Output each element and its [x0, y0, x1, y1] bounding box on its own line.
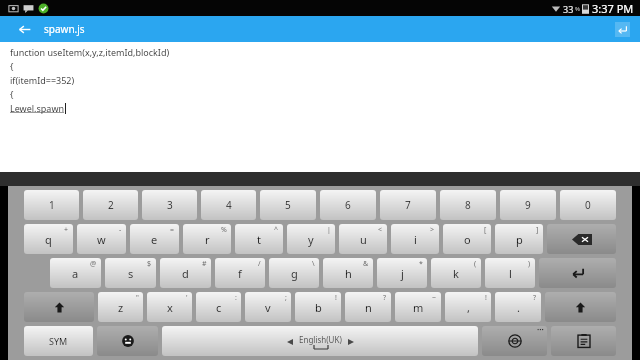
staticText: / — [258, 259, 261, 269]
staticText: u — [360, 232, 367, 247]
staticText: = — [170, 225, 175, 235]
button[interactable]: 6 — [320, 190, 376, 220]
staticText: ( — [474, 259, 477, 269]
button[interactable]: Shift — [24, 292, 94, 322]
staticText: ~ — [432, 293, 437, 303]
staticText: ? — [383, 293, 387, 303]
button[interactable]: 4 — [201, 190, 256, 220]
button[interactable]: k — [431, 258, 481, 288]
staticText: < — [378, 225, 383, 235]
staticText: b — [315, 300, 322, 315]
staticText: 33 — [563, 3, 574, 15]
button[interactable]: x — [147, 292, 192, 322]
button[interactable]: n — [345, 292, 391, 322]
staticText: i — [414, 232, 417, 247]
button[interactable]: Change language — [482, 326, 547, 356]
button[interactable]: v — [245, 292, 291, 322]
button[interactable]: i — [391, 224, 439, 254]
button[interactable]: w — [77, 224, 126, 254]
other: Sync complete — [38, 3, 49, 14]
button[interactable]: 2 — [83, 190, 138, 220]
staticText: ) — [528, 259, 531, 269]
staticText: f — [238, 266, 242, 281]
staticText: & — [363, 259, 369, 269]
button[interactable]: r — [183, 224, 231, 254]
button[interactable]: b — [295, 292, 341, 322]
other: Screenshot — [8, 3, 19, 14]
button[interactable]: a — [50, 258, 101, 288]
staticText: ' — [186, 293, 188, 303]
button[interactable]: 0 — [560, 190, 616, 220]
staticText: 8 — [465, 198, 471, 212]
staticText: Lewel.spawn — [10, 102, 65, 114]
staticText: n — [365, 300, 372, 315]
button[interactable]: j — [377, 258, 427, 288]
staticText: 3 — [167, 198, 173, 212]
button[interactable]: f — [215, 258, 265, 288]
button[interactable]: 7 — [380, 190, 436, 220]
staticText: w — [97, 232, 106, 247]
staticText: if(itemId==352) — [10, 74, 75, 86]
staticText: 9 — [525, 198, 531, 212]
other: Messages — [23, 3, 34, 14]
button[interactable]: e — [130, 224, 179, 254]
button[interactable]: s — [105, 258, 156, 288]
button[interactable]: t — [235, 224, 283, 254]
button[interactable]: Emoji — [97, 326, 158, 356]
button[interactable]: 3 — [142, 190, 197, 220]
button[interactable]: u — [339, 224, 387, 254]
staticText: c — [216, 300, 222, 315]
staticText: m — [413, 300, 424, 315]
staticText: { — [10, 60, 14, 72]
button[interactable]: q — [24, 224, 73, 254]
button[interactable]: z — [98, 292, 143, 322]
button[interactable]: Space — [162, 326, 478, 356]
staticText: r — [205, 232, 210, 247]
button[interactable]: Enter — [539, 258, 616, 288]
button[interactable]: . — [495, 292, 541, 322]
staticText: l — [509, 266, 512, 281]
staticText: q — [45, 232, 52, 247]
button[interactable]: g — [269, 258, 319, 288]
button[interactable]: p — [495, 224, 543, 254]
button[interactable]: 9 — [500, 190, 556, 220]
staticText: [ — [484, 225, 487, 235]
button[interactable]: Insert newline — [615, 22, 630, 37]
staticText: @ — [90, 259, 97, 269]
staticText: \ — [312, 259, 315, 269]
staticText: English(UK) — [299, 334, 342, 345]
button[interactable]: 8 — [440, 190, 496, 220]
staticText: 6 — [345, 198, 351, 212]
button[interactable]: h — [323, 258, 373, 288]
staticText: x — [167, 300, 173, 315]
button[interactable]: o — [443, 224, 491, 254]
staticText: % — [575, 5, 580, 13]
staticText: t — [257, 232, 261, 247]
staticText: ••• — [537, 326, 544, 334]
staticText: : — [235, 293, 237, 303]
staticText: h — [345, 266, 352, 281]
staticText: . — [517, 300, 520, 315]
button[interactable]: SYM — [24, 326, 93, 356]
staticText: o — [464, 232, 471, 247]
staticText: d — [182, 266, 189, 281]
button[interactable]: Shift — [545, 292, 616, 322]
staticText: 3:37 PM — [592, 1, 634, 16]
button[interactable]: c — [196, 292, 241, 322]
button[interactable]: d — [160, 258, 211, 288]
staticText: 0 — [585, 198, 591, 212]
button[interactable]: m — [395, 292, 441, 322]
button[interactable]: Clipboard — [551, 326, 616, 356]
button[interactable]: l — [485, 258, 535, 288]
button[interactable]: Backspace — [547, 224, 616, 254]
staticText: % — [221, 225, 227, 235]
button[interactable]: y — [287, 224, 335, 254]
staticText: e — [151, 232, 158, 247]
button[interactable]: Back — [14, 19, 34, 39]
button[interactable]: , — [445, 292, 491, 322]
button[interactable]: 5 — [260, 190, 316, 220]
staticText: 1 — [49, 198, 55, 212]
button[interactable]: 1 — [24, 190, 79, 220]
staticText: , — [467, 300, 470, 315]
staticText: ! — [335, 293, 337, 303]
